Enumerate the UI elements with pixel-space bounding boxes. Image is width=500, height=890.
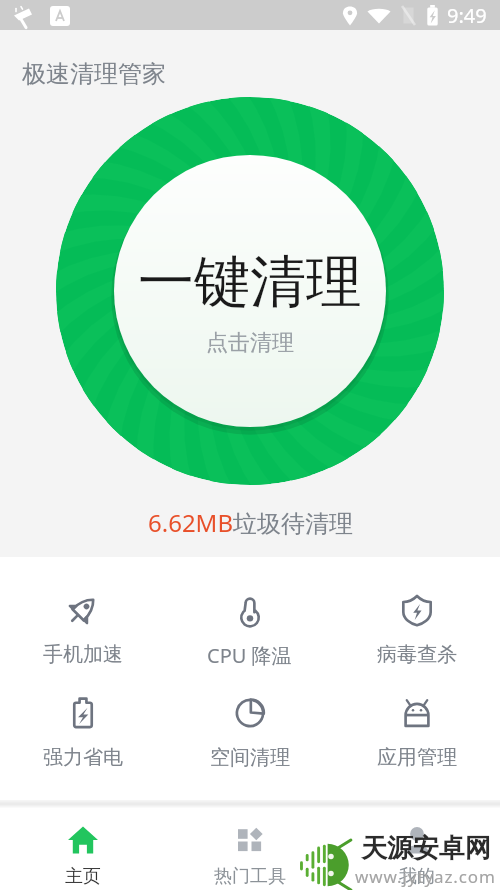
staticText: 手机加速 [43,642,123,667]
staticText: 热门工具 [214,865,286,888]
button[interactable]: 强力省电 [0,688,166,776]
staticText: 强力省电 [43,745,123,770]
staticText: 极速清理管家 [22,59,166,89]
staticText: 6.62MB垃圾待清理 [148,506,353,539]
button[interactable]: 应用管理 [333,688,500,776]
button[interactable]: 我的 [333,808,500,890]
button[interactable]: 主页 [0,808,166,890]
staticText: 主页 [65,865,101,888]
staticText: 病毒查杀 [377,642,457,667]
button[interactable]: 空间清理 [166,688,333,776]
staticText: 9:49 [447,2,487,29]
staticText: CPU 降温 [207,642,292,669]
button[interactable]: 病毒查杀 [333,585,500,673]
button[interactable]: 热门工具 [166,808,333,890]
staticText: 天源安卓网 [361,832,491,865]
staticText: www.jytyaz.com [355,865,496,888]
staticText: 空间清理 [210,745,290,770]
button[interactable]: CPU 降温 [166,585,333,675]
staticText: 点击清理 [206,329,294,357]
button[interactable]: 手机加速 [0,585,166,673]
staticText: 一键清理 [138,247,362,318]
staticText: 应用管理 [377,745,457,770]
button[interactable]: 一键清理 [56,97,444,485]
staticText: 我的 [399,865,435,888]
